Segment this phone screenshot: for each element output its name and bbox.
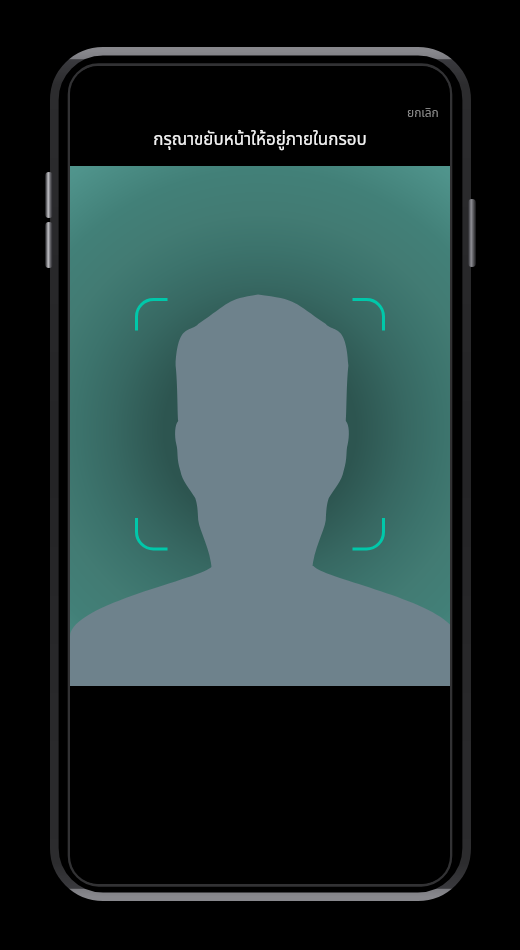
staticText: ยกเลิก [407,104,439,122]
staticText: กรุณาขยับหน้าให้อยู่ภายในกรอบ [70,127,450,153]
button[interactable]: ยกเลิก [405,102,441,124]
